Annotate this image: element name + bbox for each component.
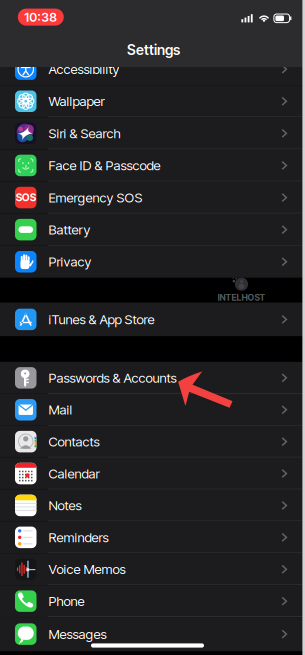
button[interactable]: Messages — [0, 617, 305, 651]
staticText: Mail — [48, 402, 72, 418]
staticText: Calendar — [48, 465, 99, 482]
button[interactable]: Mail — [0, 394, 305, 426]
button[interactable]: Privacy — [0, 246, 305, 278]
staticText: Contacts — [48, 434, 99, 450]
button[interactable]: iTunes & App Store — [0, 302, 305, 336]
staticText: Passwords & Accounts — [48, 370, 176, 386]
button[interactable]: Face ID & Passcode — [0, 149, 305, 181]
button[interactable]: Phone — [0, 585, 305, 617]
staticText: Face ID & Passcode — [48, 157, 160, 173]
button[interactable]: SOS — [0, 181, 305, 214]
button[interactable]: Reminders — [0, 521, 305, 553]
staticText: Voice Memos — [48, 561, 125, 577]
button[interactable]: Calendar — [0, 458, 305, 489]
staticText: Siri & Search — [48, 125, 120, 141]
staticText: iTunes & App Store — [48, 311, 154, 327]
button[interactable]: Accessibility — [0, 67, 305, 85]
staticText: Notes — [48, 497, 81, 513]
staticText: INTELHOST — [217, 292, 265, 303]
button[interactable]: Passwords & Accounts — [0, 362, 305, 394]
staticText: Battery — [48, 222, 90, 238]
button[interactable]: Contacts — [0, 426, 305, 458]
button[interactable]: Siri & Search — [0, 117, 305, 149]
staticText: Privacy — [48, 254, 91, 270]
staticText: Phone — [48, 593, 84, 609]
staticText: Reminders — [48, 529, 108, 545]
button[interactable]: Voice Memos — [0, 553, 305, 585]
staticText: Messages — [48, 626, 106, 642]
staticText: Wallpaper — [48, 93, 104, 109]
staticText: Emergency SOS — [48, 189, 142, 206]
staticText: Accessibility — [48, 61, 119, 77]
staticText: Settings — [127, 41, 180, 58]
staticText: 10:38 — [24, 9, 57, 25]
button[interactable]: Notes — [0, 489, 305, 521]
button[interactable]: Wallpaper — [0, 85, 305, 117]
staticText: SOS — [16, 191, 36, 204]
button[interactable]: Battery — [0, 214, 305, 246]
